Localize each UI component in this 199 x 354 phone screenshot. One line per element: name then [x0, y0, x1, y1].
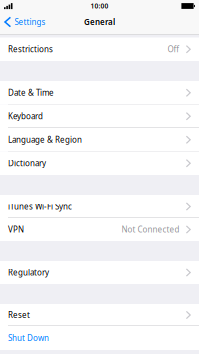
staticText: 10:00	[90, 2, 108, 10]
button[interactable]: Restrictions	[0, 37, 199, 61]
button[interactable]: Keyboard	[0, 104, 199, 128]
button[interactable]: Shut Down	[0, 326, 199, 350]
button[interactable]: iTunes Wi-Fi Sync	[0, 195, 199, 218]
staticText: Not Connected	[122, 224, 180, 235]
staticText: Date & Time	[8, 87, 54, 98]
button[interactable]: Dictionary	[0, 151, 199, 175]
staticText: VPN	[8, 224, 24, 235]
button[interactable]: Date & Time	[0, 81, 199, 104]
staticText: Keyboard	[8, 111, 43, 121]
staticText: Language & Region	[8, 134, 82, 145]
button[interactable]: Reset	[0, 304, 199, 326]
staticText: Restrictions	[8, 44, 53, 54]
staticText: Dictionary	[8, 158, 46, 168]
button[interactable]: VPN	[0, 218, 199, 241]
staticText: General	[84, 17, 115, 27]
staticText: Reset	[8, 310, 30, 320]
staticText: iTunes Wi-Fi Sync	[8, 201, 72, 212]
staticText: Regulatory	[8, 267, 49, 278]
button[interactable]: Regulatory	[0, 261, 199, 284]
staticText: Settings	[14, 17, 45, 27]
button[interactable]: Language & Region	[0, 128, 199, 151]
staticText: Off	[168, 44, 180, 54]
button[interactable]: Settings	[0, 12, 49, 35]
staticText: Shut Down	[8, 333, 49, 343]
